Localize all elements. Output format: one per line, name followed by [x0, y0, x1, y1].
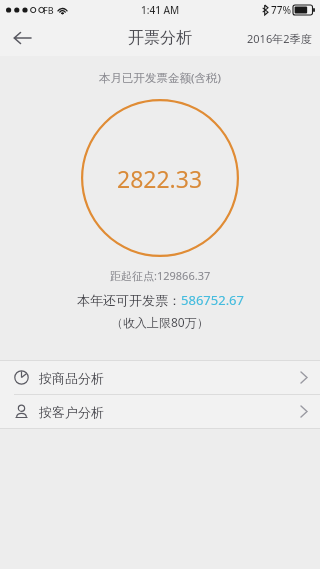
staticText: 2016年2季度 — [247, 31, 312, 46]
staticText: 距起征点:129866.37 — [110, 268, 211, 283]
staticText: 本月已开发票金额(含税) — [99, 70, 221, 86]
staticText: 2822.33 — [117, 163, 203, 194]
button[interactable]: 按客户分析 — [0, 395, 320, 428]
staticText: 按商品分析 — [39, 370, 104, 386]
button[interactable]: 2016年2季度 — [247, 31, 312, 46]
button[interactable]: 按商品分析 — [0, 361, 320, 394]
staticText: （收入上限80万） — [111, 314, 209, 330]
button[interactable]: Back — [0, 20, 44, 56]
staticText: FB — [43, 4, 54, 16]
staticText: 按客户分析 — [39, 404, 104, 420]
staticText: 开票分析 — [128, 28, 192, 48]
staticText: 77% — [271, 3, 291, 17]
staticText: 本年还可开发票：586752.67 — [77, 291, 244, 309]
staticText: 1:41 AM — [141, 3, 180, 17]
